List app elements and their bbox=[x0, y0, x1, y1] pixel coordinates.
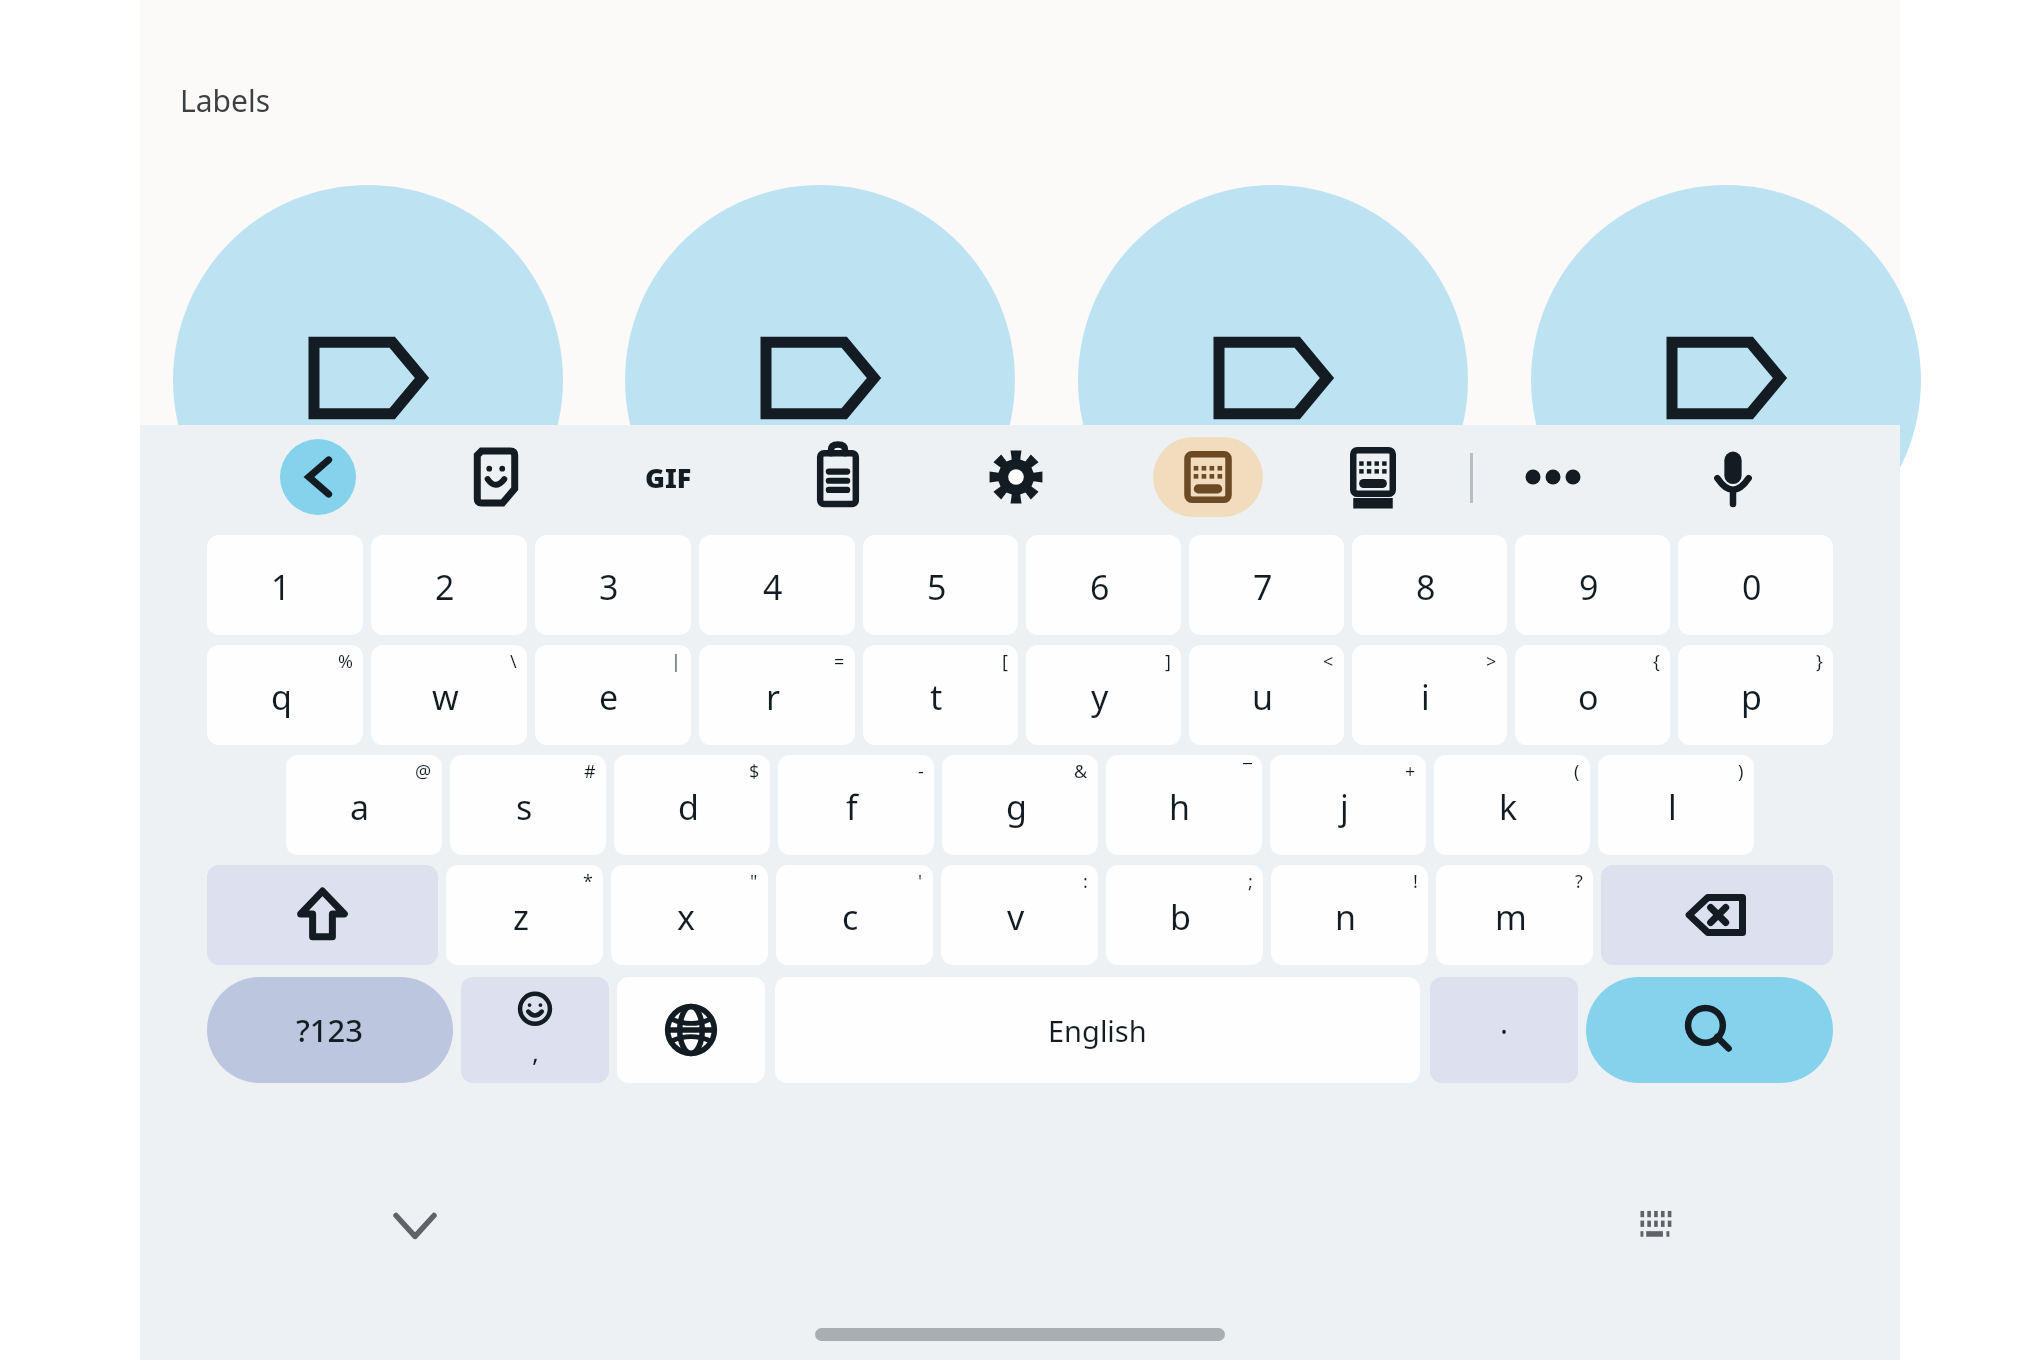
staticText: n bbox=[1335, 894, 1357, 940]
staticText: r bbox=[766, 674, 781, 720]
button[interactable]: More options bbox=[1515, 439, 1591, 515]
button[interactable]: u bbox=[1189, 645, 1344, 745]
button[interactable]: 9 bbox=[1515, 535, 1670, 635]
staticText: g bbox=[1006, 784, 1027, 830]
staticText: 5 bbox=[927, 564, 947, 610]
staticText: % bbox=[338, 649, 353, 674]
button[interactable]: n bbox=[1271, 865, 1428, 965]
staticText: ( bbox=[1574, 759, 1580, 784]
button[interactable]: j bbox=[1270, 755, 1426, 855]
button[interactable]: y bbox=[1026, 645, 1181, 745]
staticText: y bbox=[1091, 674, 1109, 720]
staticText: @ bbox=[415, 759, 432, 784]
staticText: h bbox=[1169, 784, 1191, 830]
staticText: e bbox=[599, 674, 619, 720]
button[interactable]: o bbox=[1515, 645, 1670, 745]
button[interactable]: a bbox=[286, 755, 442, 855]
staticText: a bbox=[350, 784, 370, 830]
button[interactable]: z bbox=[446, 865, 603, 965]
button[interactable]: ?123 bbox=[207, 977, 453, 1083]
staticText: $ bbox=[749, 759, 760, 784]
staticText: i bbox=[1421, 674, 1430, 720]
button[interactable]: v bbox=[941, 865, 1098, 965]
button[interactable]: g bbox=[942, 755, 1098, 855]
button[interactable]: m bbox=[1436, 865, 1593, 965]
staticText: z bbox=[513, 894, 529, 940]
staticText: | bbox=[671, 649, 681, 674]
staticText: Labels bbox=[180, 80, 271, 121]
button[interactable]: Change language bbox=[617, 977, 765, 1083]
staticText: x bbox=[677, 894, 695, 940]
staticText: : bbox=[1083, 869, 1088, 894]
staticText: ' bbox=[918, 869, 923, 894]
staticText: ) bbox=[1738, 759, 1744, 784]
button[interactable]: d bbox=[614, 755, 770, 855]
staticText: c bbox=[842, 894, 859, 940]
button[interactable]: l bbox=[1598, 755, 1754, 855]
staticText: k bbox=[1499, 784, 1518, 830]
staticText: 4 bbox=[763, 564, 783, 610]
button[interactable]: 8 bbox=[1352, 535, 1507, 635]
staticText: ; bbox=[1248, 869, 1253, 894]
button[interactable]: Keyboard layout bbox=[1153, 437, 1263, 517]
staticText: v bbox=[1007, 894, 1025, 940]
staticText: 0 bbox=[1742, 564, 1762, 610]
button[interactable]: 6 bbox=[1026, 535, 1181, 635]
staticText: } bbox=[1816, 649, 1823, 674]
button[interactable]: h bbox=[1106, 755, 1262, 855]
button[interactable]: p bbox=[1678, 645, 1833, 745]
staticText: > bbox=[1486, 649, 1497, 674]
staticText: ? bbox=[1575, 869, 1583, 894]
button[interactable]: Emoji and comma bbox=[461, 977, 609, 1083]
staticText: . bbox=[1500, 1002, 1509, 1043]
button[interactable]: 3 bbox=[535, 535, 691, 635]
button[interactable]: q bbox=[207, 645, 363, 745]
button[interactable]: Backspace bbox=[1601, 865, 1833, 965]
staticText: = bbox=[834, 649, 845, 674]
button[interactable]: f bbox=[778, 755, 934, 855]
staticText: English bbox=[1048, 1011, 1147, 1050]
button[interactable]: English bbox=[775, 977, 1420, 1083]
staticText: q bbox=[271, 674, 292, 720]
button[interactable]: Back bbox=[280, 439, 356, 515]
staticText: { bbox=[1653, 649, 1660, 674]
button[interactable]: Shift bbox=[207, 865, 438, 965]
button[interactable]: . bbox=[1430, 977, 1578, 1083]
button[interactable]: 4 bbox=[699, 535, 855, 635]
button[interactable]: Settings bbox=[978, 439, 1054, 515]
button[interactable]: Voice input bbox=[1695, 439, 1771, 515]
button[interactable]: 1 bbox=[207, 535, 363, 635]
button[interactable]: 2 bbox=[371, 535, 527, 635]
button[interactable]: k bbox=[1434, 755, 1590, 855]
staticText: 2 bbox=[435, 564, 455, 610]
button[interactable]: i bbox=[1352, 645, 1507, 745]
button[interactable]: w bbox=[371, 645, 527, 745]
staticText: ‾ bbox=[1243, 759, 1252, 784]
button[interactable]: t bbox=[863, 645, 1018, 745]
button[interactable]: 7 bbox=[1189, 535, 1344, 635]
button[interactable]: r bbox=[699, 645, 855, 745]
staticText: GIF bbox=[645, 459, 692, 496]
staticText: o bbox=[1578, 674, 1599, 720]
button[interactable]: c bbox=[776, 865, 933, 965]
staticText: w bbox=[432, 674, 459, 720]
button[interactable]: b bbox=[1106, 865, 1263, 965]
staticText: j bbox=[1340, 784, 1349, 830]
staticText: < bbox=[1323, 649, 1334, 674]
button[interactable]: Hide keyboard bbox=[380, 1190, 450, 1260]
button[interactable]: e bbox=[535, 645, 691, 745]
staticText: 9 bbox=[1579, 564, 1599, 610]
button[interactable]: Search bbox=[1586, 977, 1833, 1083]
button[interactable]: Keyboard settings bbox=[1620, 1190, 1690, 1260]
staticText: ?123 bbox=[296, 1009, 364, 1051]
staticText: # bbox=[584, 759, 596, 784]
button[interactable]: s bbox=[450, 755, 606, 855]
button[interactable]: Clipboard bbox=[800, 439, 876, 515]
button[interactable]: 0 bbox=[1678, 535, 1833, 635]
button[interactable]: Stickers bbox=[458, 439, 534, 515]
button[interactable]: x bbox=[611, 865, 768, 965]
button[interactable]: 5 bbox=[863, 535, 1018, 635]
staticText: f bbox=[846, 784, 858, 830]
button[interactable]: Resize keyboard bbox=[1335, 439, 1411, 515]
button[interactable]: GIF bbox=[630, 439, 706, 515]
